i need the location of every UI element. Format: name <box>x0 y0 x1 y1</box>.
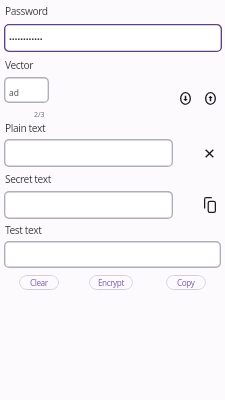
button[interactable] <box>4 191 173 219</box>
staticText: Copy <box>177 277 195 288</box>
button[interactable]: Export <box>203 91 217 105</box>
staticText: Test text <box>5 223 42 237</box>
button[interactable]: Clear <box>200 144 218 162</box>
button[interactable]: Import <box>178 91 192 105</box>
staticText: Password <box>5 4 48 18</box>
staticText: Vector <box>5 58 34 72</box>
button[interactable] <box>4 241 221 268</box>
button[interactable]: ad <box>4 77 49 103</box>
button[interactable] <box>4 24 222 52</box>
staticText: Clear <box>30 277 48 288</box>
button[interactable] <box>4 139 173 167</box>
button[interactable]: Copy <box>166 275 206 290</box>
button[interactable]: Clear <box>19 275 59 290</box>
button[interactable]: Copy <box>200 195 220 215</box>
staticText: 2/3 <box>34 110 45 120</box>
staticText: Plain text <box>5 121 46 135</box>
staticText: Secret text <box>5 172 51 186</box>
button[interactable]: Encrypt <box>89 275 133 290</box>
staticText: Encrypt <box>98 277 124 288</box>
staticText: ad <box>9 87 19 99</box>
